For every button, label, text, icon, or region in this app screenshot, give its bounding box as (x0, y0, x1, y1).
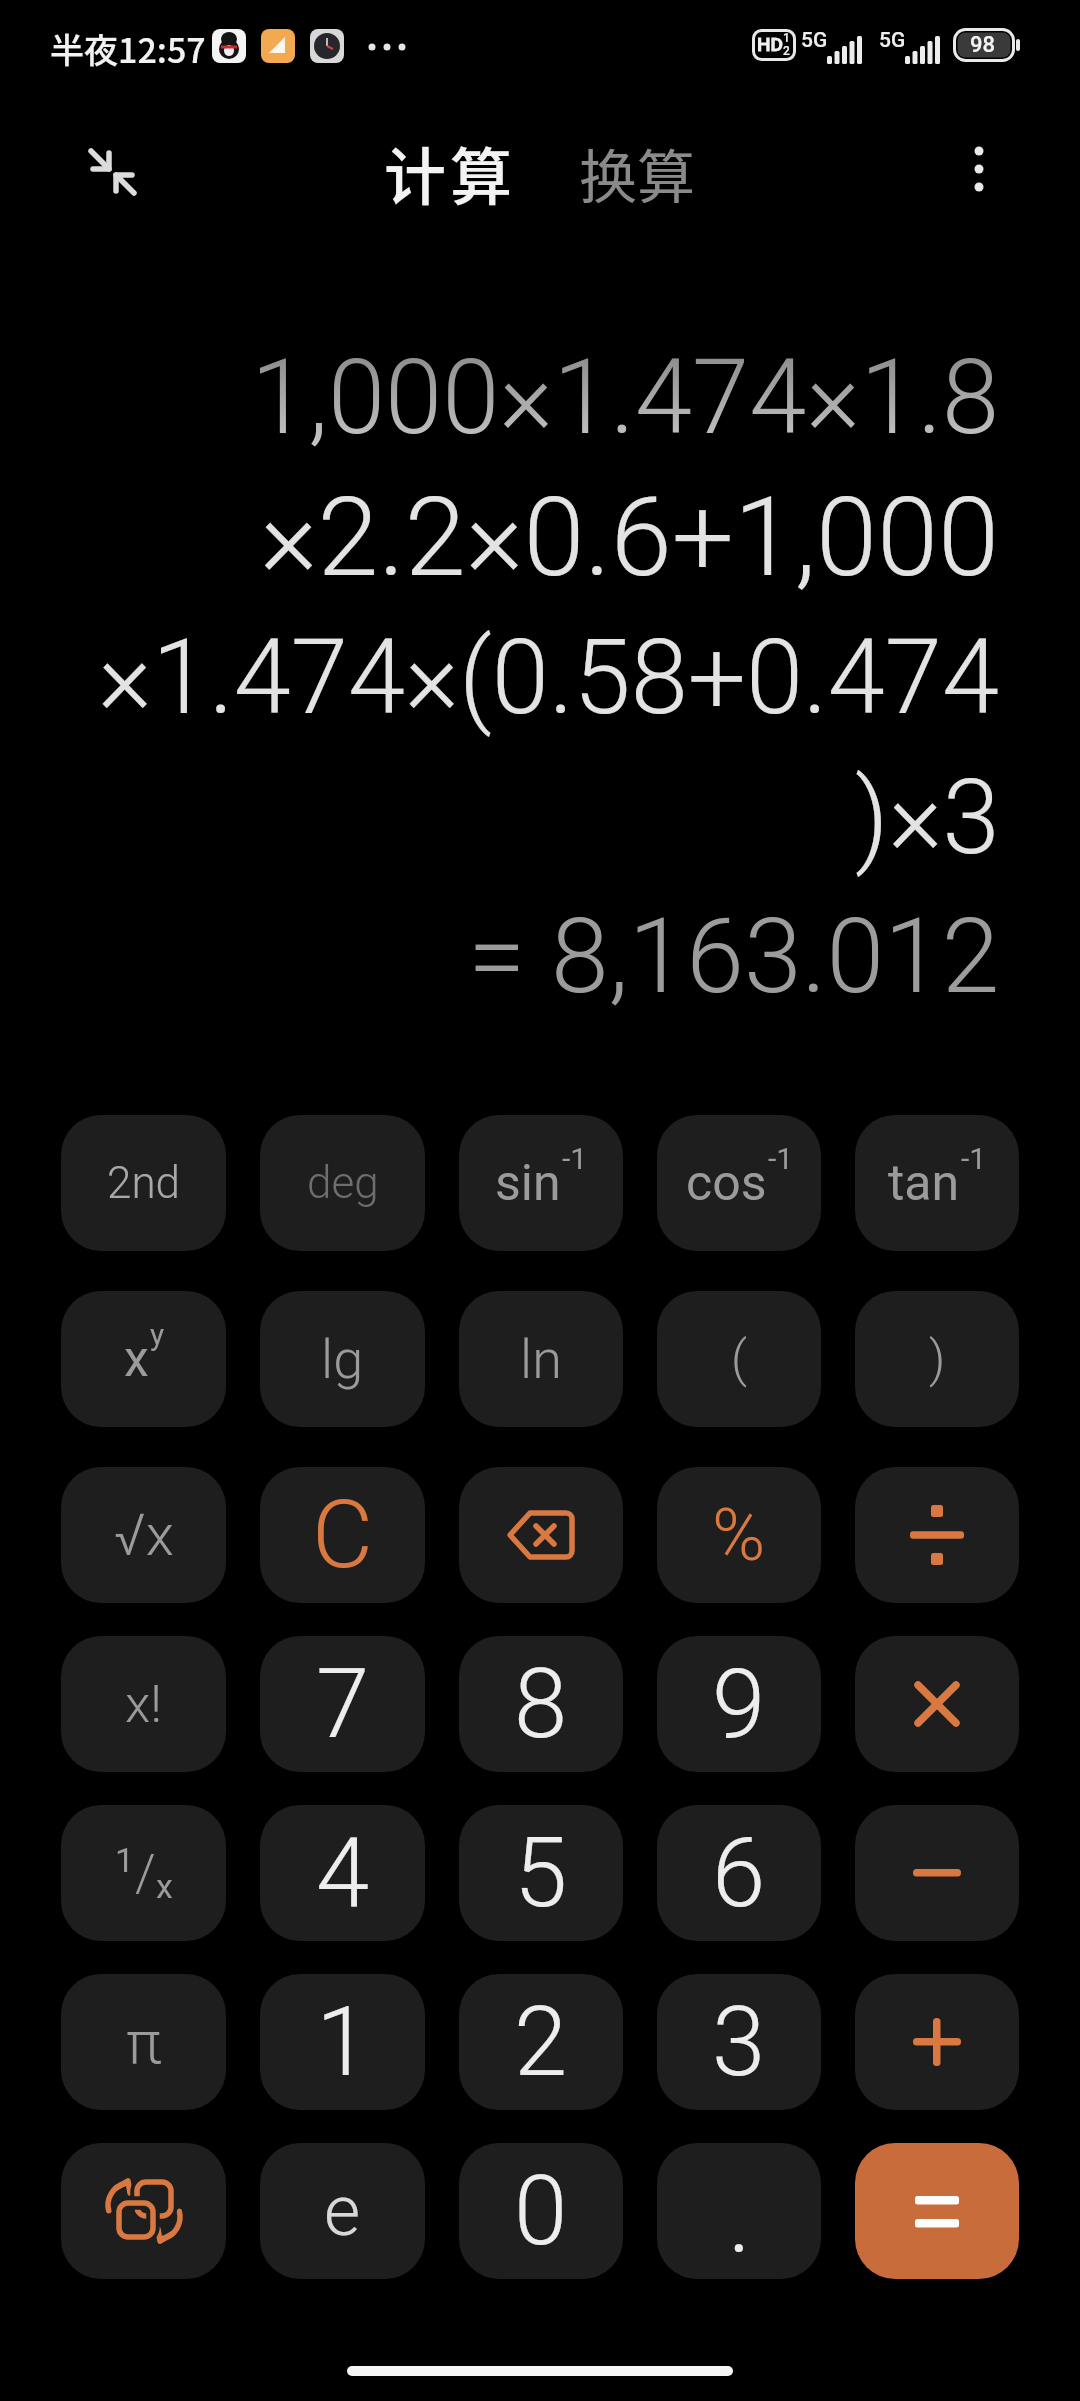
staticText: 5G (801, 28, 828, 53)
staticText: 1 (316, 1986, 370, 2099)
staticText: 2 (783, 44, 790, 58)
button[interactable] (855, 2143, 1019, 2279)
staticText: x (124, 1330, 149, 1389)
staticText: 2nd (107, 1157, 181, 1209)
button[interactable]: lg (260, 1291, 425, 1427)
button[interactable] (952, 138, 1006, 192)
button[interactable]: x (61, 1291, 226, 1427)
staticText: % (712, 1493, 766, 1577)
staticText: cos (686, 1154, 767, 1213)
button[interactable]: ( (657, 1291, 821, 1427)
button[interactable]: % (657, 1467, 821, 1603)
staticText: ) (929, 1330, 946, 1389)
button[interactable] (855, 1636, 1019, 1772)
button[interactable] (459, 1467, 623, 1603)
staticText: x (156, 1866, 173, 1906)
staticText: 5G (879, 28, 906, 53)
staticText: π (126, 2007, 162, 2077)
button[interactable]: 7 (260, 1636, 425, 1772)
staticText: 4 (316, 1817, 370, 1930)
button[interactable]: 8 (459, 1636, 623, 1772)
button[interactable]: 5 (459, 1805, 623, 1941)
staticText: C (312, 1480, 374, 1590)
staticText: -1 (768, 1141, 794, 1176)
button[interactable]: deg (260, 1115, 425, 1251)
staticText: 3 (712, 1986, 766, 2099)
button[interactable]: π (61, 1974, 226, 2110)
button[interactable] (76, 132, 152, 208)
button[interactable]: 计算 (384, 128, 517, 218)
button[interactable]: sin (459, 1115, 623, 1251)
button[interactable]: 3 (657, 1974, 821, 2110)
staticText: 半夜12:57 (50, 24, 206, 73)
staticText: 6 (712, 1817, 766, 1930)
staticText: = 8,163.012 (468, 896, 1000, 1018)
button[interactable]: 4 (260, 1805, 425, 1941)
staticText: lg (321, 1328, 364, 1391)
button[interactable]: ) (855, 1291, 1019, 1427)
staticText: ×2.2×0.6+1,000 (260, 473, 1000, 602)
staticText: e (324, 2170, 361, 2252)
staticText: 5 (514, 1817, 568, 1930)
staticText: x! (125, 1674, 163, 1735)
staticText: ( (731, 1330, 747, 1389)
staticText: 1 (115, 1840, 135, 1880)
staticText: 7 (316, 1648, 370, 1761)
button[interactable]: 换算 (579, 131, 696, 215)
button[interactable] (855, 1805, 1019, 1941)
staticText: 8 (514, 1648, 568, 1761)
staticText: / (135, 1843, 156, 1904)
button[interactable]: 6 (657, 1805, 821, 1941)
button[interactable] (61, 2143, 226, 2279)
button[interactable] (855, 1974, 1019, 2110)
staticText: 1,000×1.474×1.8 (251, 337, 1000, 458)
staticText: deg (307, 1157, 379, 1209)
button[interactable]: e (260, 2143, 425, 2279)
staticText: sin (495, 1154, 561, 1213)
staticText: ×1.474×(0.58+0.474 (98, 617, 1000, 738)
staticText: ln (520, 1328, 562, 1391)
staticText: tan (888, 1154, 960, 1213)
button[interactable]: tan (855, 1115, 1019, 1251)
staticText: 0 (514, 2155, 568, 2268)
staticText: 2 (514, 1986, 568, 2099)
button[interactable]: 2 (459, 1974, 623, 2110)
staticText: . (728, 2163, 751, 2276)
staticText: 1 (783, 31, 790, 45)
button[interactable]: 0 (459, 2143, 623, 2279)
button[interactable]: 9 (657, 1636, 821, 1772)
staticText: )×3 (855, 757, 1000, 878)
button[interactable]: ln (459, 1291, 623, 1427)
staticText: -1 (562, 1141, 588, 1176)
button[interactable] (855, 1467, 1019, 1603)
button[interactable]: √x (61, 1467, 226, 1603)
staticText: 9 (712, 1648, 766, 1761)
staticText: 98 (970, 32, 996, 58)
button[interactable]: . (657, 2143, 821, 2279)
button[interactable]: x! (61, 1636, 226, 1772)
staticText: -1 (961, 1141, 987, 1176)
staticText: HD (757, 33, 783, 55)
staticText: √x (114, 1501, 174, 1569)
button[interactable]: cos (657, 1115, 821, 1251)
button[interactable]: 1 (260, 1974, 425, 2110)
button[interactable]: 2nd (61, 1115, 226, 1251)
staticText: y (150, 1317, 165, 1352)
button[interactable]: C (260, 1467, 425, 1603)
button[interactable]: 1 (61, 1805, 226, 1941)
